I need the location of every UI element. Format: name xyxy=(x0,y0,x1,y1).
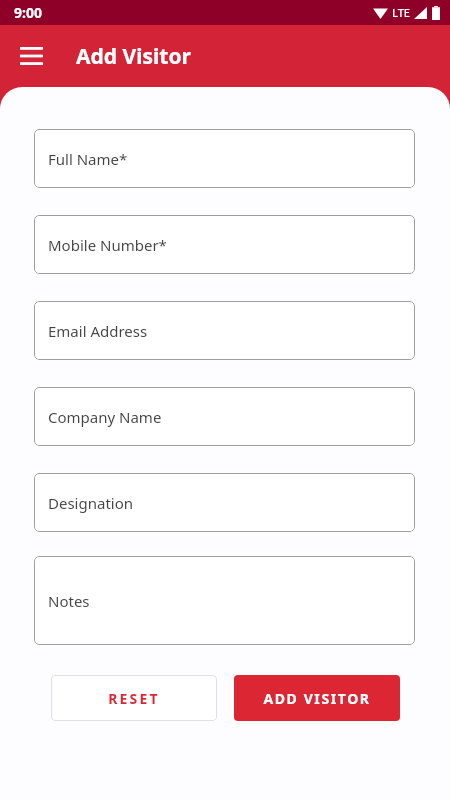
button[interactable]: Designation xyxy=(34,473,415,532)
button[interactable]: Company Name xyxy=(34,387,415,446)
button[interactable]: Mobile Number* xyxy=(34,215,415,274)
button[interactable]: Notes xyxy=(34,556,415,645)
button[interactable]: Full Name* xyxy=(34,129,415,188)
staticText: Designation xyxy=(48,493,134,513)
staticText: 9:00 xyxy=(14,3,42,22)
staticText: Email Address xyxy=(48,321,148,341)
button[interactable]: RESET xyxy=(51,675,217,721)
staticText: Company Name xyxy=(48,407,162,427)
staticText: LTE xyxy=(392,5,410,20)
staticText: ADD VISITOR xyxy=(263,689,371,708)
button[interactable]: Email Address xyxy=(34,301,415,360)
button[interactable]: Open navigation menu xyxy=(10,35,52,77)
staticText: Full Name* xyxy=(48,149,128,169)
staticText: Add Visitor xyxy=(76,42,191,71)
button[interactable]: ADD VISITOR xyxy=(234,675,400,721)
staticText: RESET xyxy=(108,689,160,708)
staticText: Notes xyxy=(48,591,90,611)
staticText: Mobile Number* xyxy=(48,235,167,255)
